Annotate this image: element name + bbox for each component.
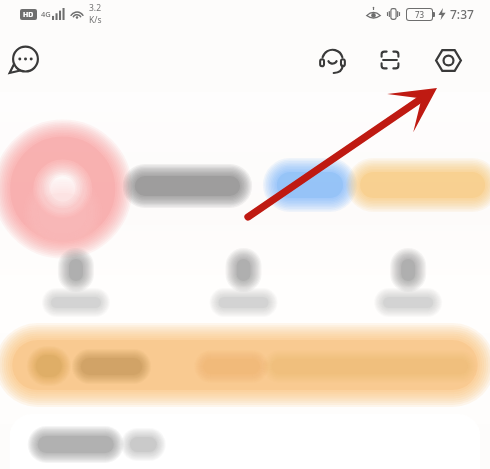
button[interactable]: Customer service [309, 37, 355, 83]
button[interactable]: Messages [2, 37, 48, 83]
button[interactable]: Scan [367, 37, 413, 83]
staticText: 73 [415, 9, 425, 20]
staticText: 3.2 [89, 2, 102, 14]
staticText: HD [23, 10, 34, 20]
staticText: 4G [41, 9, 51, 19]
staticText: 7:37 [450, 6, 474, 22]
staticText: K/s [89, 14, 102, 26]
button[interactable]: Settings [425, 37, 471, 83]
